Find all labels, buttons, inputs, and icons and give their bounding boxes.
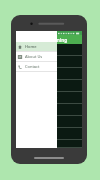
staticText: C++ Basics <box>20 48 40 53</box>
button[interactable]: Arrays <box>16 128 82 140</box>
staticText: Contact <box>25 64 40 69</box>
staticText: Variables <box>20 60 38 65</box>
button[interactable]: Open navigation drawer <box>18 36 26 44</box>
button[interactable]: Decision Making - If <box>16 92 82 104</box>
staticText: About Us <box>25 54 43 59</box>
button[interactable]: C++ Basics <box>16 44 82 56</box>
staticText: C++ Programming <box>27 37 68 43</box>
staticText: Home <box>25 44 37 49</box>
button[interactable]: Variables <box>16 56 82 68</box>
button[interactable]: Loops <box>16 116 82 128</box>
staticText: Decision Making - If <box>20 96 58 101</box>
button[interactable]: About Us <box>16 52 57 61</box>
button[interactable]: Decision - switch <box>16 104 82 116</box>
button[interactable]: Functions <box>16 140 82 148</box>
button[interactable]: Home <box>16 42 57 51</box>
button[interactable]: Data Types <box>16 68 82 80</box>
button[interactable]: Contact <box>16 62 57 71</box>
button[interactable]: Operators <box>16 80 82 92</box>
